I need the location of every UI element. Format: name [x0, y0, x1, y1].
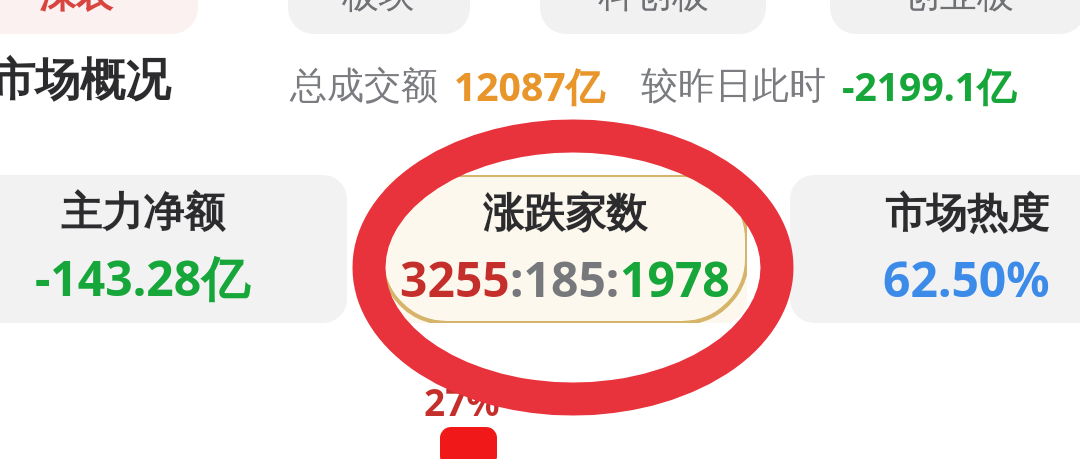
staticText: :185:: [510, 246, 620, 311]
staticText: 涨跌家数: [483, 188, 647, 240]
button[interactable]: 科创板: [540, 0, 766, 34]
staticText: -2199.1亿: [842, 59, 1016, 112]
staticText: 总成交额: [290, 62, 438, 109]
staticText: 1978: [620, 246, 730, 311]
staticText: 板块: [342, 0, 416, 18]
staticText: 主力净额: [61, 187, 225, 239]
staticText: 62.50%: [883, 246, 1050, 311]
staticText: -143.28亿: [35, 245, 250, 311]
button[interactable]: 主力净额: [0, 175, 347, 323]
button[interactable]: 深农: [0, 0, 198, 34]
button[interactable]: 创业板: [830, 0, 1080, 34]
staticText: 12087亿: [454, 59, 605, 112]
staticText: 深农: [39, 0, 113, 18]
other: Highlight annotation: [0, 0, 1080, 459]
staticText: 较昨日此时: [641, 62, 826, 109]
staticText: 市场热度: [885, 188, 1049, 240]
button[interactable]: 涨跌家数: [382, 175, 747, 323]
staticText: 市场概况: [0, 52, 170, 109]
button[interactable]: 板块: [288, 0, 470, 34]
staticText: 科创板: [598, 0, 709, 18]
button[interactable]: 市场热度: [790, 175, 1080, 323]
staticText: 创业板: [903, 0, 1014, 18]
staticText: 27%: [424, 376, 500, 426]
staticText: 3255: [400, 246, 510, 311]
